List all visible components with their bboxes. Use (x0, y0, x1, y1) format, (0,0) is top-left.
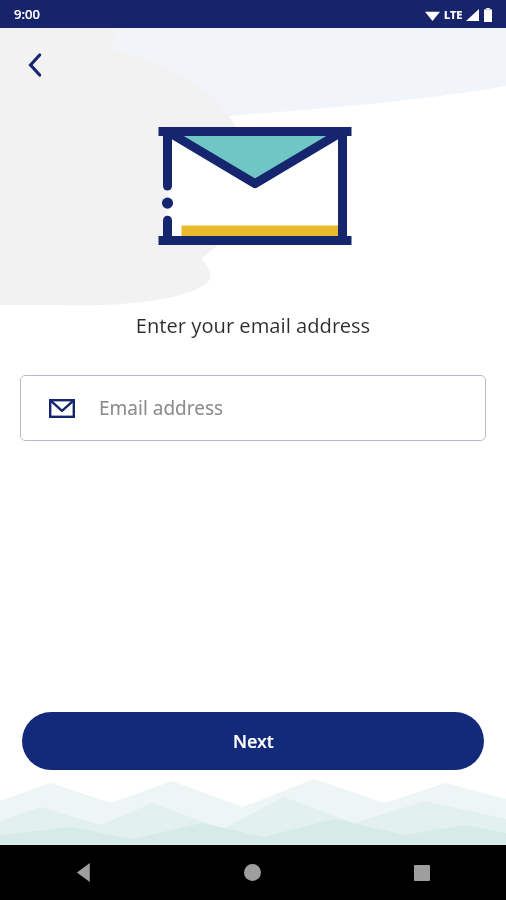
staticText: Email address (99, 395, 224, 421)
staticText: Enter your email address (0, 312, 506, 339)
staticText: Next (233, 729, 274, 754)
button[interactable]: Home (168, 845, 337, 900)
button[interactable]: Back (0, 845, 168, 900)
staticText: 9:00 (14, 5, 40, 23)
staticText: LTE (444, 7, 463, 22)
button[interactable]: Next (22, 712, 484, 770)
button[interactable]: Back (14, 44, 56, 86)
button[interactable]: Recent apps (337, 845, 506, 900)
button[interactable]: Email address (20, 375, 486, 441)
